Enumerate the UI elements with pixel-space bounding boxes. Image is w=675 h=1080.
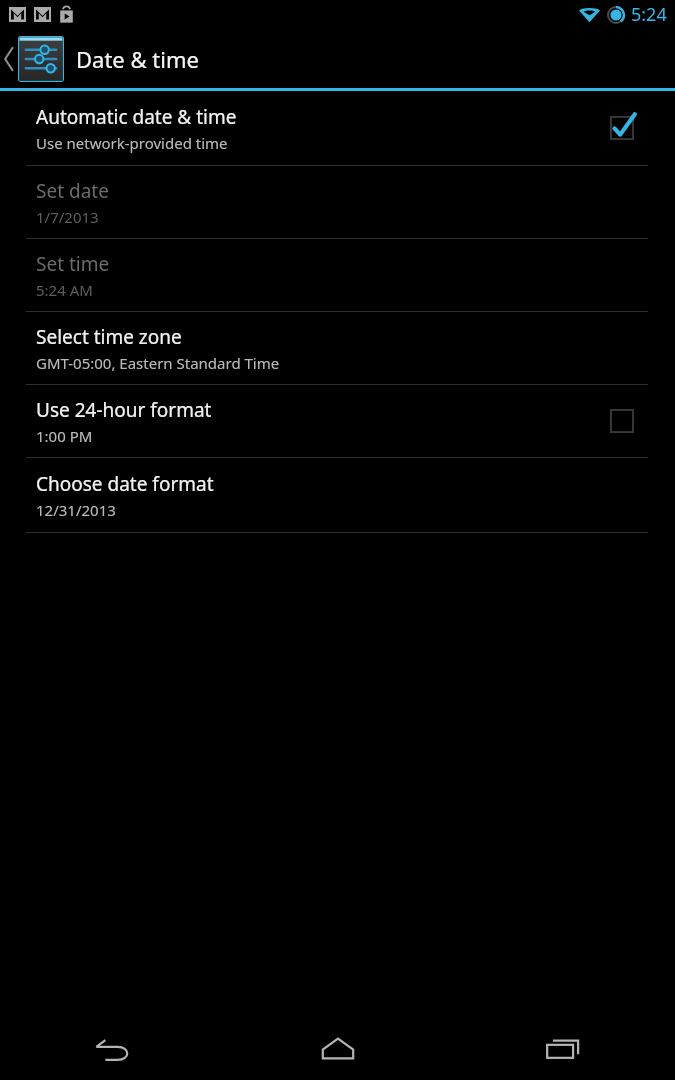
staticText: Date & time <box>76 44 199 74</box>
button[interactable]: Checked, Automatic date & time <box>607 113 637 143</box>
button[interactable]: Use 24-hour format <box>0 385 675 457</box>
staticText: 1/7/2013 <box>36 207 99 227</box>
staticText: GMT-05:00, Eastern Standard Time <box>36 353 280 373</box>
staticText: 1:00 PM <box>36 426 93 446</box>
staticText: Set date <box>36 178 109 204</box>
button[interactable]: Unchecked, Use 24-hour format <box>607 406 637 436</box>
staticText: Select time zone <box>36 324 182 350</box>
staticText: Use 24-hour format <box>36 397 212 423</box>
staticText: Choose date format <box>36 471 214 497</box>
staticText: 5:24 AM <box>36 280 93 300</box>
staticText: 12/31/2013 <box>36 500 116 520</box>
button[interactable]: Choose date format <box>0 458 675 532</box>
staticText: Automatic date & time <box>36 104 237 130</box>
staticText: Set time <box>36 251 110 277</box>
staticText: Use network-provided time <box>36 133 228 153</box>
button[interactable]: Back <box>0 1018 225 1080</box>
button[interactable]: Select time zone <box>0 312 675 384</box>
button[interactable]: Set date <box>0 166 675 238</box>
button[interactable]: Home <box>225 1018 450 1080</box>
button[interactable]: Navigate up <box>0 29 199 88</box>
staticText: 5:24 <box>631 2 667 27</box>
button[interactable]: Automatic date & time <box>0 91 675 165</box>
button[interactable]: Set time <box>0 239 675 311</box>
button[interactable]: Recent apps <box>450 1018 675 1080</box>
